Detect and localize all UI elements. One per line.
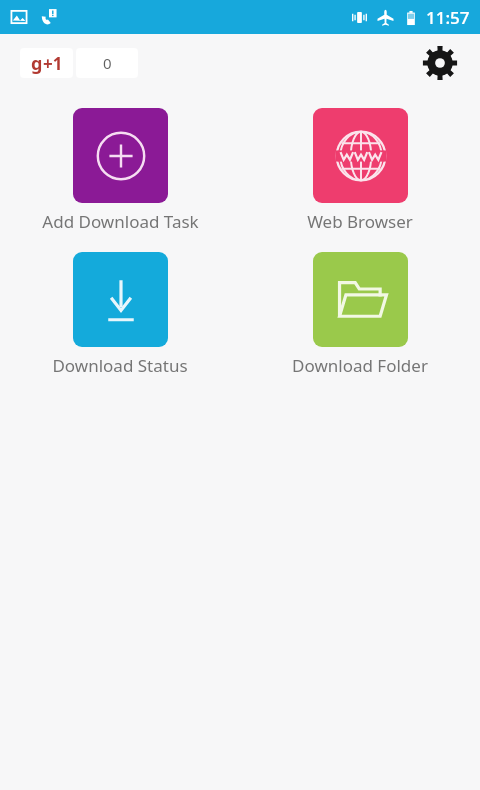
staticText: Download Folder [292,354,428,377]
staticText: Web Browser [307,210,413,233]
staticText: 0 [103,53,112,73]
staticText: Add Download Task [42,210,199,233]
button[interactable]: Settings [418,41,462,85]
staticText: 11:57 [426,6,470,29]
staticText: +1 [43,52,63,75]
button[interactable]: Download Folder [292,252,428,377]
button[interactable]: Download Status [52,252,188,377]
button[interactable]: g [20,48,138,78]
button[interactable]: Web Browser [307,108,413,233]
button[interactable]: Add Download Task [42,108,199,233]
staticText: Download Status [52,354,188,377]
staticText: g [31,51,43,76]
